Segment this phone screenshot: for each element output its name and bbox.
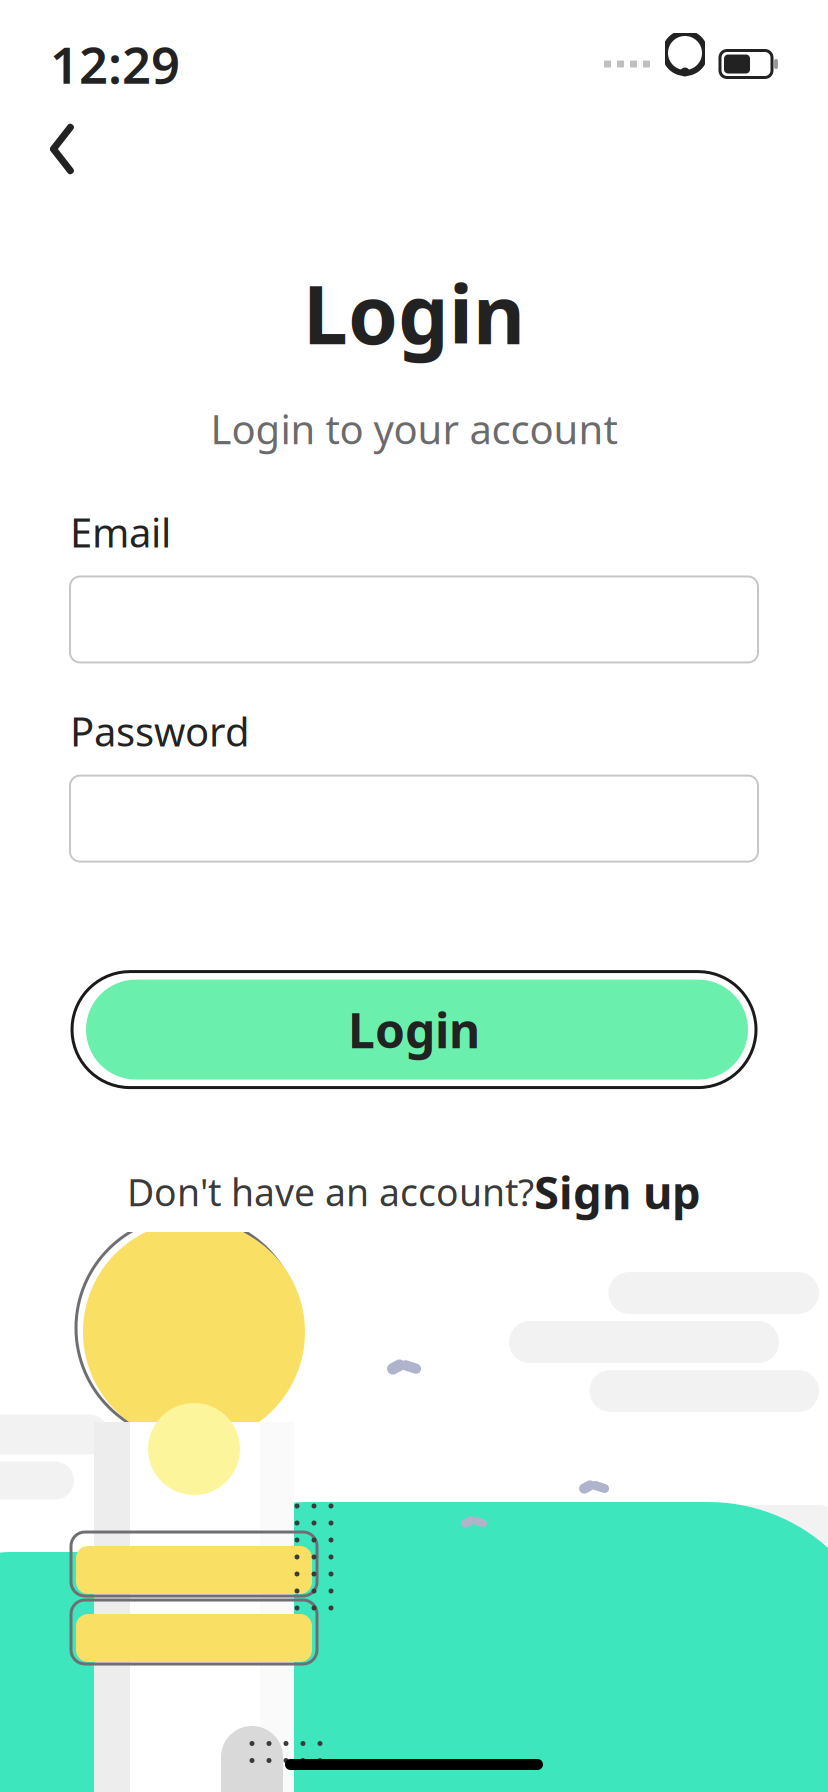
button[interactable]: Email <box>70 558 758 662</box>
button[interactable]: Password <box>70 758 758 862</box>
button[interactable]: Sign up <box>534 1162 701 1222</box>
button[interactable]: Login <box>0 970 828 1090</box>
staticText: Email <box>70 505 171 558</box>
staticText: 12:29 <box>50 30 180 98</box>
staticText: Don't have an account? <box>127 1167 534 1216</box>
staticText: Login <box>303 260 525 366</box>
staticText: Sign up <box>534 1162 701 1222</box>
button[interactable]: Back <box>30 117 94 181</box>
staticText: Login to your account <box>210 402 617 455</box>
staticText: Login <box>348 998 480 1061</box>
staticText: Password <box>70 704 250 758</box>
